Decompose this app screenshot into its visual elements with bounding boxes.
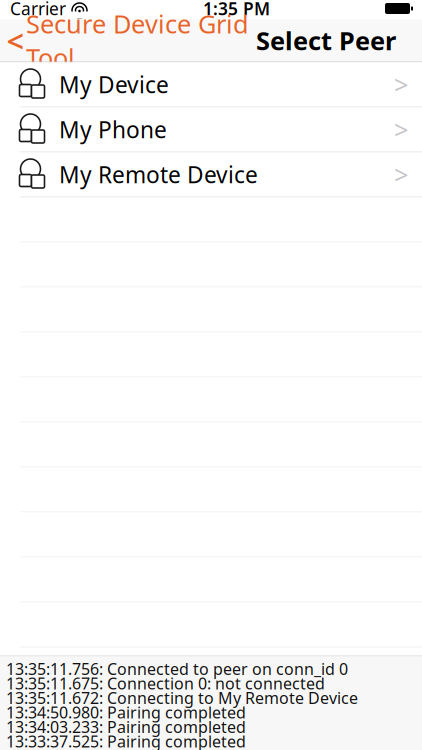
staticText: > [394,68,408,101]
staticText: > [394,158,408,191]
staticText: 13:35:11.675: Connection 0: not connecte… [6,673,325,694]
staticText: My Phone [59,114,167,144]
staticText: My Remote Device [59,159,258,189]
staticText: 13:34:03.233: Pairing completed [6,716,246,737]
staticText: 13:35:11.672: Connecting to My Remote De… [6,687,358,708]
staticText: Select Peer [256,24,396,57]
staticText: < [6,20,24,61]
button[interactable]: < [0,19,253,61]
staticText: Secure Device Grid Tool [26,7,249,74]
staticText: > [394,113,408,146]
staticText: My Device [59,69,169,99]
button[interactable]: My Remote Device [0,152,422,197]
staticText: 13:34:50.980: Pairing completed [6,702,246,723]
staticText: 13:33:37.525: Pairing completed [6,731,246,750]
staticText: 13:35:11.756: Connected to peer on conn_… [6,658,348,679]
staticText: 1:35 PM [203,0,270,20]
button[interactable]: My Phone [0,107,422,152]
staticText: Carrier [10,0,66,20]
button[interactable]: My Device [0,62,422,107]
